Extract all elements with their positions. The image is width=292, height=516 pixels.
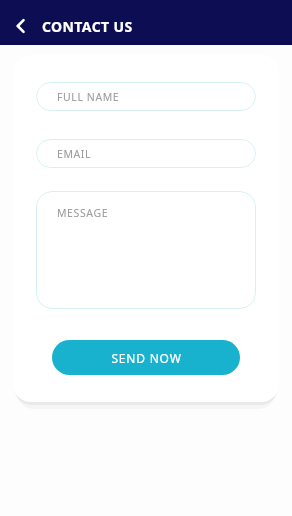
button[interactable]: FULL NAME [36, 82, 256, 111]
staticText: MESSAGE [57, 206, 109, 220]
button[interactable]: SEND NOW [52, 340, 240, 375]
staticText: SEND NOW [111, 350, 182, 366]
staticText: FULL NAME [57, 90, 120, 104]
staticText: CONTACT US [42, 17, 133, 36]
button[interactable]: Back [6, 11, 36, 41]
button[interactable]: EMAIL [36, 139, 256, 168]
staticText: EMAIL [57, 147, 92, 161]
button[interactable]: MESSAGE [36, 191, 256, 309]
